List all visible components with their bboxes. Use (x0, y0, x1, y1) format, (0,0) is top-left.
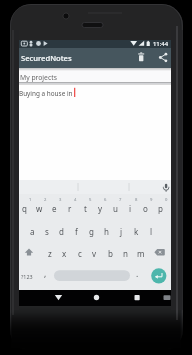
button[interactable] (19, 85, 171, 180)
button[interactable] (54, 266, 130, 285)
button[interactable]: g (84, 223, 99, 239)
button[interactable]: f (69, 223, 84, 239)
staticText: 5 (89, 197, 92, 203)
staticText: 1 (29, 197, 32, 203)
staticText: 4 (74, 197, 77, 203)
staticText: ?123 (21, 273, 33, 280)
button[interactable]: e (47, 200, 62, 216)
button[interactable] (149, 266, 169, 285)
button[interactable]: l (144, 223, 159, 239)
staticText: 9 (150, 197, 153, 203)
button[interactable]: . (132, 266, 142, 282)
button[interactable] (159, 290, 174, 306)
button[interactable]: s (39, 223, 54, 239)
staticText: u (113, 203, 118, 214)
button[interactable]: d (54, 223, 69, 239)
button[interactable]: q (17, 200, 32, 216)
button[interactable]: r (62, 200, 77, 216)
staticText: h (104, 226, 109, 237)
button[interactable]: i (123, 200, 138, 216)
staticText: . (136, 268, 139, 280)
button[interactable] (158, 180, 171, 194)
staticText: y (98, 203, 103, 214)
button[interactable]: o (138, 200, 153, 216)
button[interactable] (150, 241, 171, 263)
staticText: o (143, 203, 148, 214)
staticText: i (129, 203, 132, 214)
staticText: n (123, 248, 128, 259)
staticText: a (30, 226, 35, 237)
staticText: Buying a house in (19, 89, 73, 98)
staticText: r (68, 203, 72, 214)
staticText: g (89, 226, 94, 237)
staticText: 8 (135, 197, 138, 203)
button[interactable]: c (72, 245, 87, 261)
staticText: x (62, 248, 67, 259)
button[interactable]: n (118, 245, 133, 261)
button[interactable] (19, 68, 171, 84)
button[interactable]: t (78, 200, 93, 216)
staticText: d (59, 226, 64, 237)
staticText: b (108, 248, 113, 259)
staticText: w (36, 203, 43, 214)
button[interactable]: ?123 (18, 268, 36, 284)
staticText: t (84, 203, 87, 214)
staticText: 7 (119, 197, 122, 203)
staticText: v (92, 248, 97, 259)
button[interactable]: u (108, 200, 123, 216)
staticText: My projects (20, 73, 57, 82)
button[interactable] (86, 290, 107, 306)
staticText: e (52, 203, 57, 214)
staticText: j (120, 226, 123, 237)
staticText: p (158, 203, 163, 214)
staticText: , (44, 268, 47, 280)
staticText: s (45, 226, 49, 237)
staticText: q (22, 203, 27, 214)
button[interactable]: k (129, 223, 144, 239)
button[interactable] (133, 49, 149, 67)
button[interactable]: m (133, 245, 148, 261)
staticText: f (75, 226, 78, 237)
button[interactable]: b (103, 245, 118, 261)
button[interactable] (155, 49, 171, 67)
staticText: k (134, 226, 139, 237)
button[interactable]: , (40, 266, 50, 282)
staticText: l (150, 226, 153, 237)
button[interactable]: a (25, 223, 40, 239)
button[interactable]: z (42, 245, 57, 261)
button[interactable]: p (153, 200, 168, 216)
staticText: 3 (59, 197, 62, 203)
button[interactable]: w (32, 200, 47, 216)
button[interactable] (126, 290, 147, 306)
staticText: m (137, 248, 145, 259)
staticText: z (48, 248, 52, 259)
staticText: 11:44 (153, 40, 169, 48)
staticText: SecuredNotes (21, 53, 72, 63)
button[interactable]: x (57, 245, 72, 261)
staticText: c (78, 248, 82, 259)
button[interactable] (48, 290, 69, 306)
button[interactable]: h (99, 223, 114, 239)
button[interactable]: v (87, 245, 102, 261)
button[interactable]: y (93, 200, 108, 216)
button[interactable] (19, 241, 39, 263)
staticText: 6 (104, 197, 107, 203)
button[interactable]: j (114, 223, 129, 239)
staticText: 2 (44, 197, 47, 203)
staticText: 0 (165, 197, 168, 203)
